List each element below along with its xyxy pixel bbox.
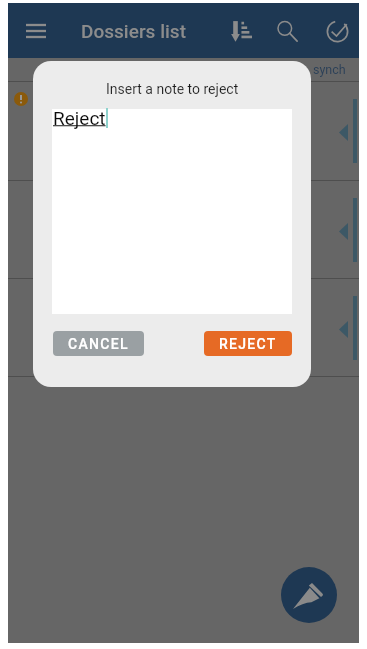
staticText: synch — [313, 62, 346, 77]
staticText: Reject — [53, 107, 106, 129]
staticText: Insert a note to reject — [106, 81, 239, 97]
button[interactable]: New dossier — [281, 567, 337, 623]
button[interactable] — [8, 82, 359, 180]
staticText: REJECT — [219, 336, 277, 352]
button[interactable]: Select all — [315, 9, 359, 53]
button[interactable] — [8, 279, 359, 376]
button[interactable]: CANCEL — [53, 331, 144, 356]
button[interactable] — [8, 181, 359, 278]
staticText: CANCEL — [68, 336, 129, 352]
button[interactable]: Search — [265, 9, 309, 53]
button[interactable]: Sort — [219, 9, 263, 53]
button[interactable]: Menu — [15, 10, 57, 52]
button[interactable]: Reject — [52, 109, 292, 314]
button[interactable]: REJECT — [204, 331, 292, 356]
staticText: Dossiers list — [81, 20, 187, 42]
